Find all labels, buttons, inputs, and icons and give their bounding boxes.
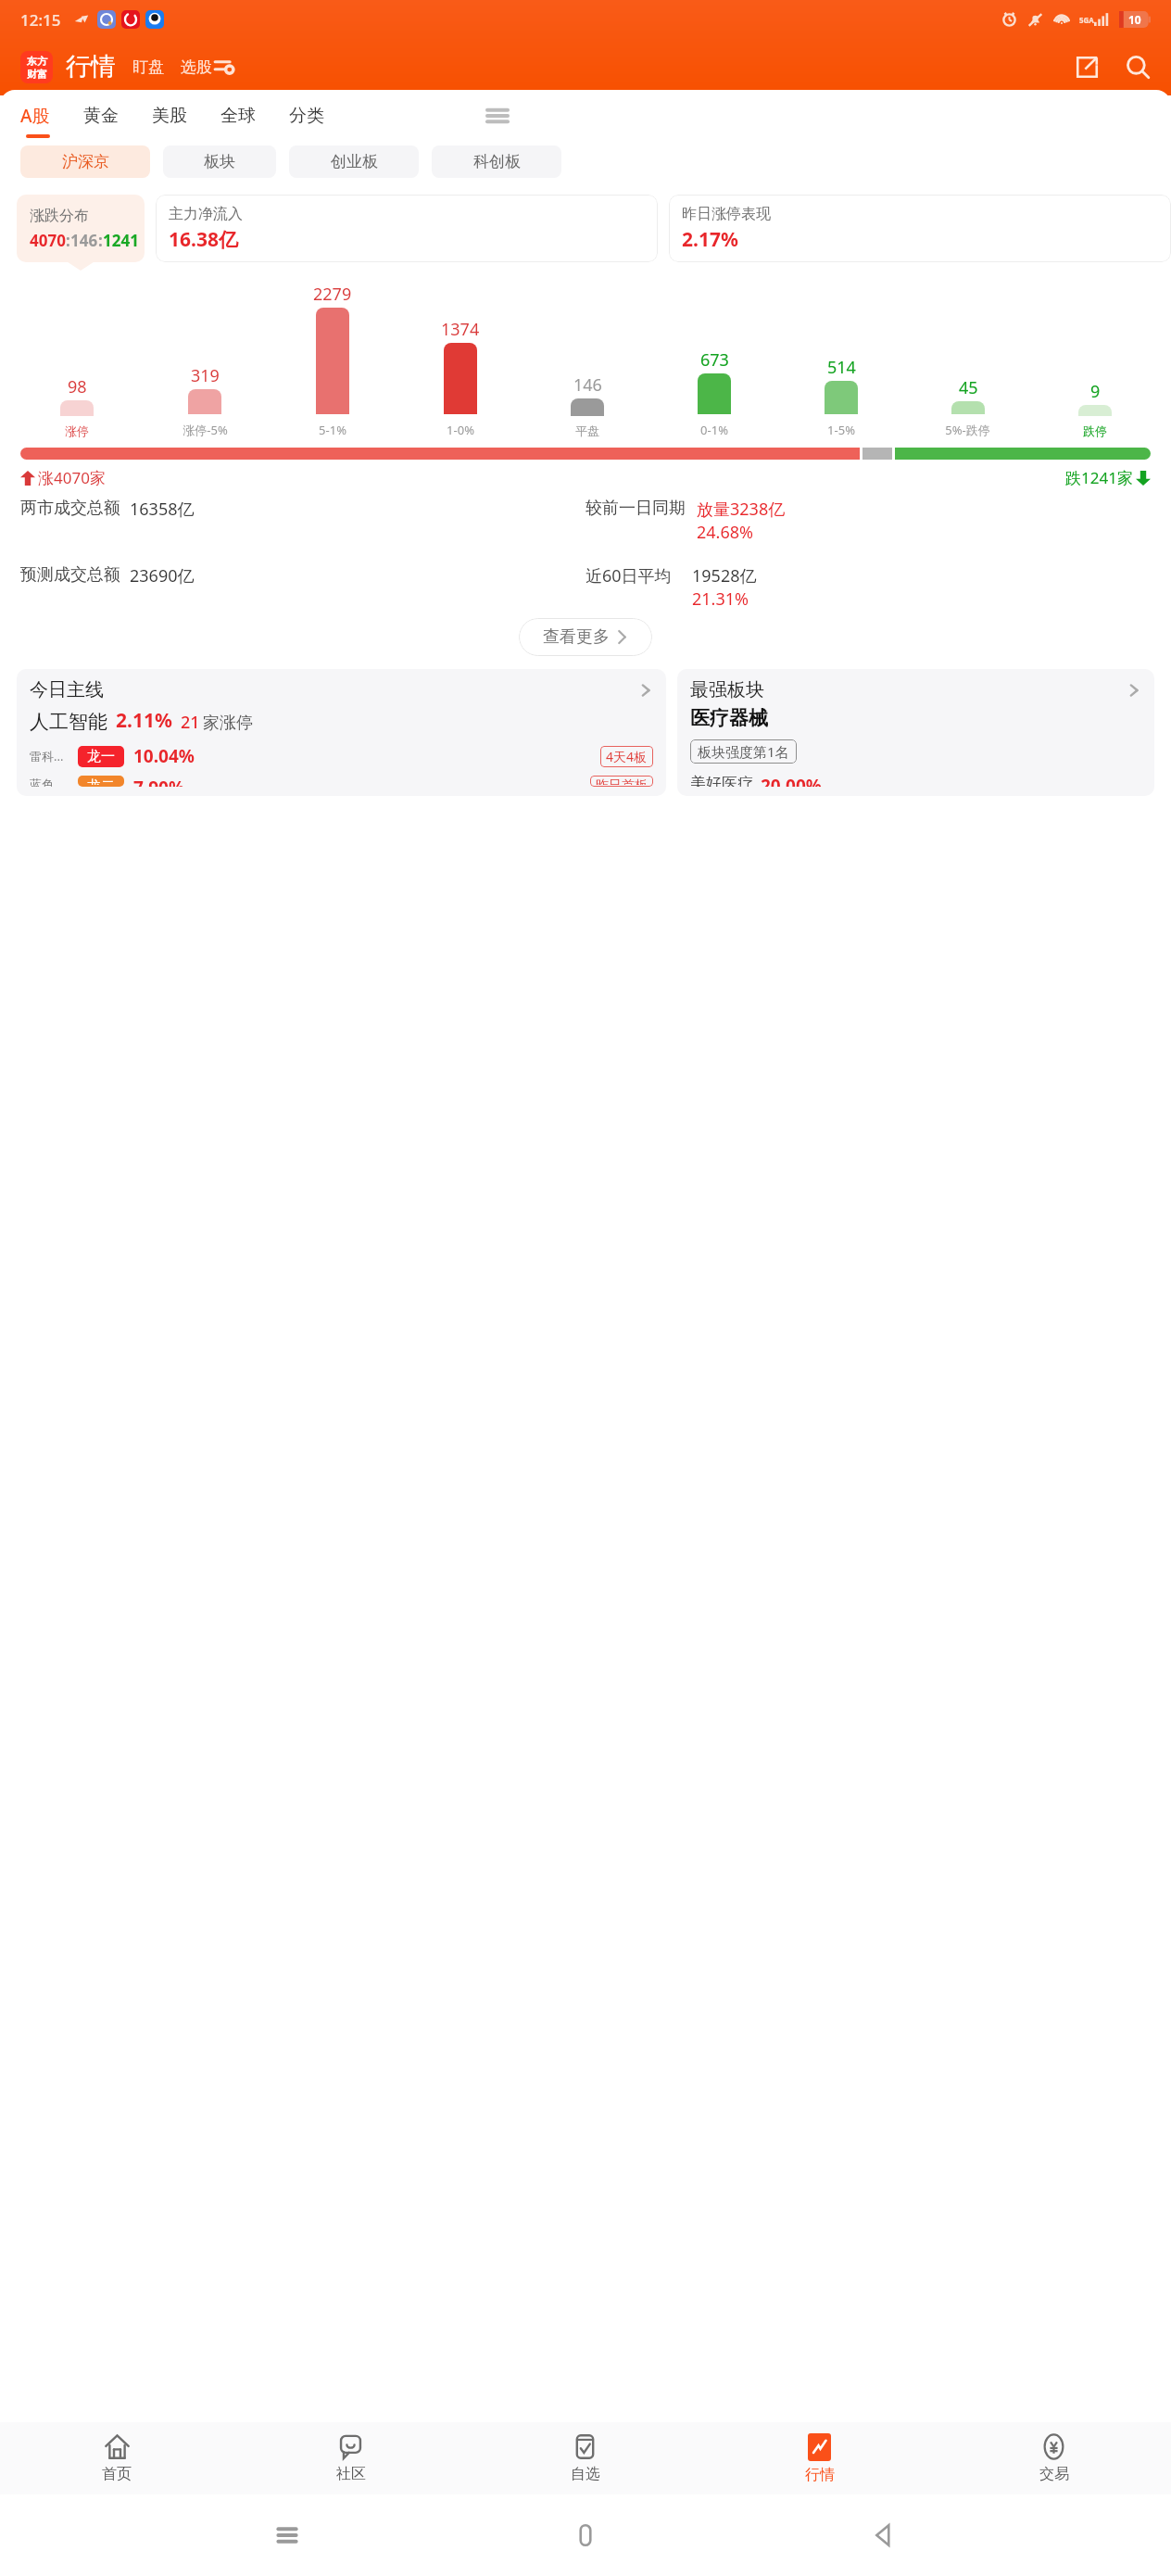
staticText: 涨跌分布 [30, 207, 89, 225]
staticText: 美好医疗 [690, 774, 753, 787]
button[interactable]: 自选 [468, 2422, 702, 2494]
staticText: 1-0% [447, 422, 474, 438]
staticText: 4天4板 [606, 748, 648, 765]
button[interactable]: 更多分类 [487, 106, 508, 126]
staticText: 2.11% [116, 707, 172, 734]
staticText: 美股 [152, 105, 187, 127]
button[interactable]: 涨跌分布 [17, 195, 145, 262]
button[interactable]: 查看更多 [519, 618, 652, 656]
button[interactable]: 沪深京 [20, 145, 150, 178]
staticText: 7.90% [133, 776, 185, 787]
staticText: 查看更多 [543, 626, 610, 648]
button[interactable]: A股 [20, 104, 50, 128]
button[interactable]: 主页 [574, 2524, 597, 2546]
staticText: A股 [20, 104, 50, 128]
button[interactable]: 返回 [873, 2524, 895, 2546]
button[interactable]: 交易 [937, 2422, 1171, 2494]
staticText: 医疗器械 [690, 706, 768, 730]
staticText: 黄金 [83, 105, 119, 127]
staticText: 东方 [27, 55, 47, 68]
staticText: 家涨停 [203, 713, 253, 734]
button[interactable]: 行情 [66, 51, 116, 82]
staticText: 龙一 [87, 748, 115, 765]
button[interactable]: 社区 [233, 2422, 468, 2494]
button[interactable]: 搜索 [1126, 55, 1151, 80]
staticText: 10 [1128, 12, 1141, 27]
staticText: 预测成交总额 [20, 564, 120, 586]
staticText: 行情 [805, 2466, 835, 2484]
staticText: 2.17% [682, 226, 738, 253]
staticText: 10.04% [133, 744, 195, 768]
staticText: 23690亿 [130, 564, 195, 587]
staticText: 交易 [1039, 2465, 1069, 2483]
staticText: 近60日平均 [585, 564, 672, 587]
staticText: 社区 [336, 2465, 366, 2483]
staticText: 146 [70, 230, 98, 251]
staticText: 分类 [289, 105, 324, 127]
button[interactable]: 科创板 [432, 145, 561, 178]
staticText: : [66, 230, 70, 251]
staticText: 两市成交总额 [20, 498, 120, 519]
button[interactable]: 美股 [152, 105, 187, 127]
staticText: 板块强度第1名 [698, 742, 789, 761]
button[interactable]: 盯盘 [132, 57, 164, 77]
staticText: 沪深京 [62, 152, 109, 171]
button[interactable]: 行情 [702, 2422, 937, 2494]
button[interactable]: 板块 [163, 145, 276, 178]
staticText: 人工智能 [30, 710, 107, 734]
staticText: 主力净流入 [169, 205, 243, 223]
button[interactable]: 首页 [0, 2422, 233, 2494]
staticText: 首页 [102, 2465, 132, 2483]
staticText: 涨停 [65, 423, 89, 438]
staticText: 514 [827, 356, 856, 379]
staticText: 4070 [30, 230, 66, 251]
button[interactable]: 选股 [181, 57, 212, 77]
staticText: 放量3238亿 [697, 498, 786, 521]
staticText: 319 [191, 364, 220, 387]
button[interactable]: 今日主线 [17, 669, 666, 796]
staticText: 16358亿 [130, 498, 195, 521]
staticText: 5GA [1079, 15, 1094, 25]
staticText: 9 [1090, 380, 1101, 403]
staticText: 雷科... [30, 748, 72, 764]
staticText: 5%-跌停 [945, 422, 990, 438]
staticText: 16.38亿 [169, 226, 238, 253]
button[interactable]: 分类 [289, 105, 324, 127]
staticText: 自选 [571, 2465, 600, 2483]
staticText: 跌停 [1083, 423, 1107, 438]
button[interactable]: 分享 [1075, 55, 1100, 80]
staticText: 昨日首板 [596, 777, 648, 785]
staticText: 1-5% [827, 422, 855, 438]
staticText: 涨4070家 [38, 467, 106, 488]
staticText: 最强板块 [690, 678, 764, 701]
staticText: 12:15 [20, 9, 61, 31]
staticText: 2279 [313, 283, 352, 306]
button[interactable]: 创业板 [289, 145, 419, 178]
staticText: 98 [68, 375, 87, 398]
staticText: 0-1% [700, 422, 728, 438]
staticText: 财富 [27, 68, 47, 81]
button[interactable]: 黄金 [83, 105, 119, 127]
staticText: 昨日涨停表现 [682, 205, 771, 223]
staticText: 板块 [204, 152, 235, 171]
staticText: 20.00% [761, 774, 822, 787]
button[interactable]: 全球 [220, 105, 256, 127]
staticText: 蓝色... [30, 776, 72, 787]
staticText: 龙二 [87, 777, 115, 785]
staticText: 平盘 [575, 423, 599, 438]
staticText: 1374 [441, 318, 480, 341]
staticText: 较前一日同期 [585, 498, 686, 519]
button[interactable]: 最近任务 [276, 2524, 298, 2546]
staticText: 涨停-5% [183, 422, 228, 438]
button[interactable]: 筛选 [214, 57, 234, 77]
button[interactable]: 东方财富 [20, 51, 53, 83]
staticText: 科创板 [473, 152, 521, 171]
staticText: 创业板 [331, 152, 378, 171]
button[interactable]: 昨日涨停表现 [669, 195, 1171, 262]
staticText: 19528亿 [692, 564, 757, 587]
staticText: 673 [700, 348, 729, 372]
button[interactable]: 主力净流入 [156, 195, 658, 262]
staticText: 21 [181, 711, 200, 734]
staticText: 146 [573, 373, 602, 397]
button[interactable]: 最强板块 [677, 669, 1154, 796]
